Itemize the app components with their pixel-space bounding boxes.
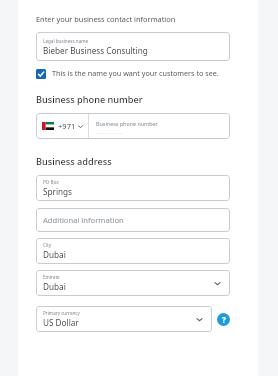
button[interactable]: This is the name you want your customers… [36,68,230,79]
staticText: Bieber Business Consulting [43,45,148,56]
button[interactable]: PO Box [36,175,230,201]
button[interactable]: Emirate [36,270,230,296]
other: United Arab Emirates [42,122,54,130]
staticText: US Dollar [43,317,79,328]
staticText: Dubai [43,249,66,260]
button[interactable]: Primary currency [36,306,212,332]
staticText: Dubai [43,281,66,292]
staticText: Emirate [43,274,60,280]
staticText: Legal business name [43,38,89,44]
button[interactable]: United Arab Emirates [36,113,230,139]
staticText: Enter your business contact information [36,14,176,24]
staticText: Business phone number [36,93,143,106]
staticText: City [43,242,52,248]
staticText: Business address [36,155,112,168]
staticText: Springs [43,186,73,197]
button[interactable]: Help [217,313,230,326]
button[interactable]: Additional information [36,208,230,232]
staticText: ? [222,314,226,325]
staticText: Business phone number [96,120,158,127]
staticText: This is the name you want your customers… [52,68,219,78]
button[interactable]: Legal business name [36,32,230,61]
staticText: +971 [58,121,76,131]
staticText: Primary currency [43,310,80,316]
staticText: PO Box [43,179,59,185]
staticText: - - - - - - - - - [96,129,122,136]
staticText: Additional information [43,215,124,225]
button[interactable]: City [36,238,230,264]
